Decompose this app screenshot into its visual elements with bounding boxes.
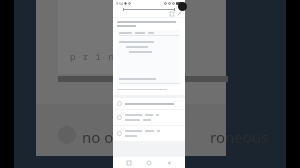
button[interactable]	[113, 110, 185, 125]
button[interactable]: Bookmark	[170, 12, 174, 16]
staticText: roneous	[210, 127, 269, 147]
staticText: sh	[144, 1, 153, 11]
button[interactable]: Share	[177, 12, 181, 16]
staticText: By	[132, 11, 141, 21]
button[interactable]: Back	[165, 159, 173, 167]
button[interactable]: Home	[145, 159, 153, 167]
button[interactable]	[113, 126, 185, 141]
staticText: no o	[82, 127, 114, 147]
button[interactable]	[113, 98, 185, 109]
button[interactable]: Recent apps	[125, 159, 133, 167]
staticText: p r i n t (	[70, 50, 141, 62]
staticText: 9:54	[116, 1, 123, 6]
